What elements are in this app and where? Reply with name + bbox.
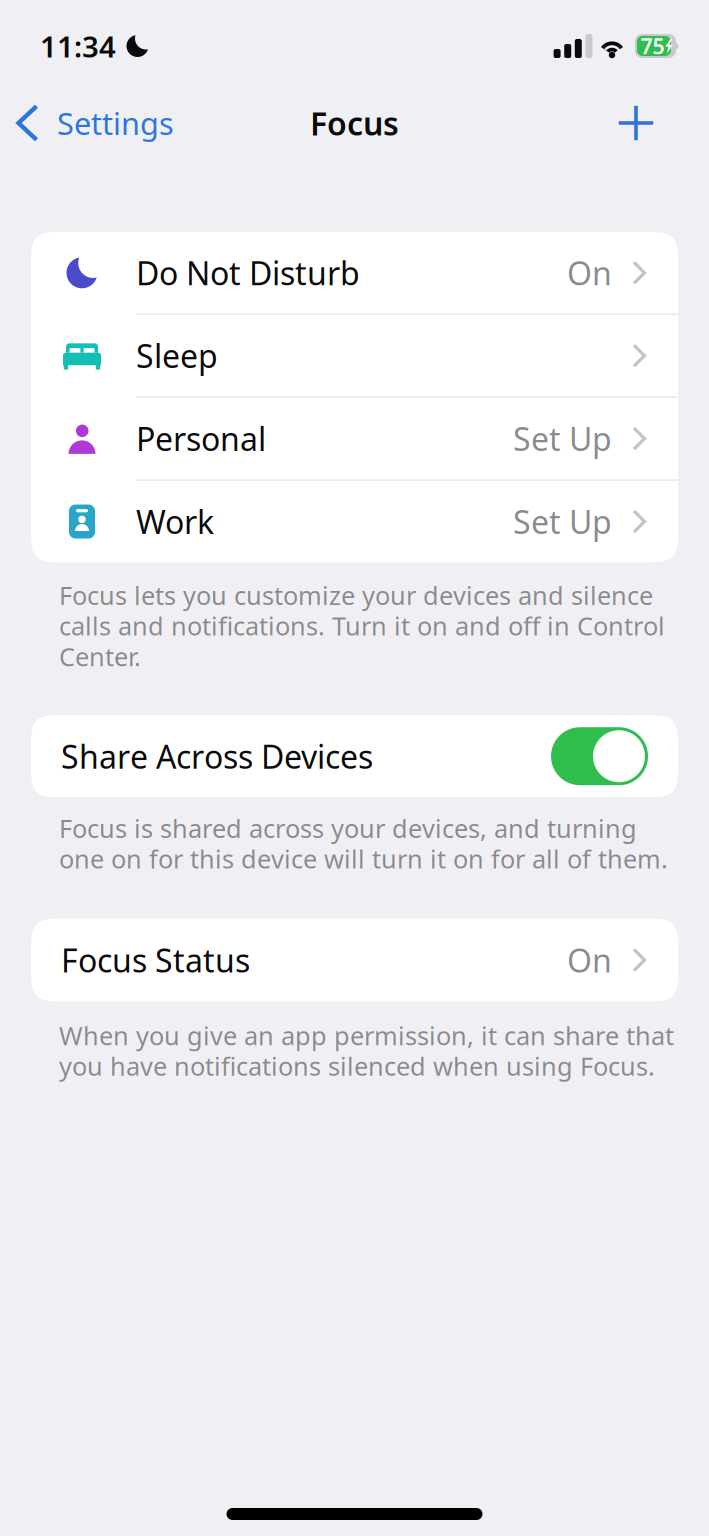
staticText: Focus [310, 102, 399, 144]
staticText: On [567, 252, 612, 294]
staticText: Center. [59, 640, 141, 673]
button[interactable]: Sleep [31, 315, 678, 396]
staticText: Focus lets you customize your devices an… [59, 578, 653, 612]
staticText: 75 [640, 32, 664, 60]
staticText: Focus Status [61, 939, 250, 981]
staticText: Work [136, 500, 214, 543]
button[interactable]: Share Across Devices [31, 715, 678, 797]
staticText: Share Across Devices [61, 735, 373, 777]
staticText: 11:34 [40, 26, 116, 65]
staticText: Set Up [513, 500, 612, 543]
staticText: Do Not Disturb [136, 252, 360, 294]
button[interactable]: Add Focus [617, 96, 709, 150]
staticText: Focus is shared across your devices, and… [59, 811, 637, 845]
staticText: On [567, 939, 612, 981]
staticText: Personal [136, 417, 266, 460]
staticText: calls and notifications. Turn it on and … [59, 609, 665, 642]
button[interactable]: Do Not Disturb [31, 232, 678, 314]
button[interactable]: Focus Status [31, 918, 678, 1001]
staticText: one on for this device will turn it on f… [59, 842, 668, 875]
staticText: you have notifications silenced when usi… [59, 1049, 655, 1083]
button[interactable]: Settings [0, 95, 174, 151]
staticText: When you give an app permission, it can … [59, 1018, 674, 1052]
button[interactable]: Personal [31, 398, 678, 479]
staticText: Sleep [136, 334, 218, 377]
staticText: Settings [57, 103, 174, 143]
staticText: Set Up [513, 417, 612, 460]
button[interactable]: Work [31, 481, 678, 562]
